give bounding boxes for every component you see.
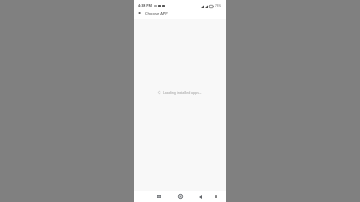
button[interactable]: Navigate up bbox=[135, 9, 143, 17]
button[interactable]: More bbox=[213, 194, 218, 199]
button[interactable]: Recent apps bbox=[155, 193, 162, 200]
staticText: 76% bbox=[215, 4, 221, 8]
button[interactable]: Back bbox=[197, 193, 204, 200]
staticText: 4:38 PM bbox=[138, 3, 153, 8]
button[interactable]: Home bbox=[177, 193, 184, 200]
staticText: Loading installed apps... bbox=[163, 90, 202, 95]
staticText: Choose APP bbox=[145, 11, 168, 16]
